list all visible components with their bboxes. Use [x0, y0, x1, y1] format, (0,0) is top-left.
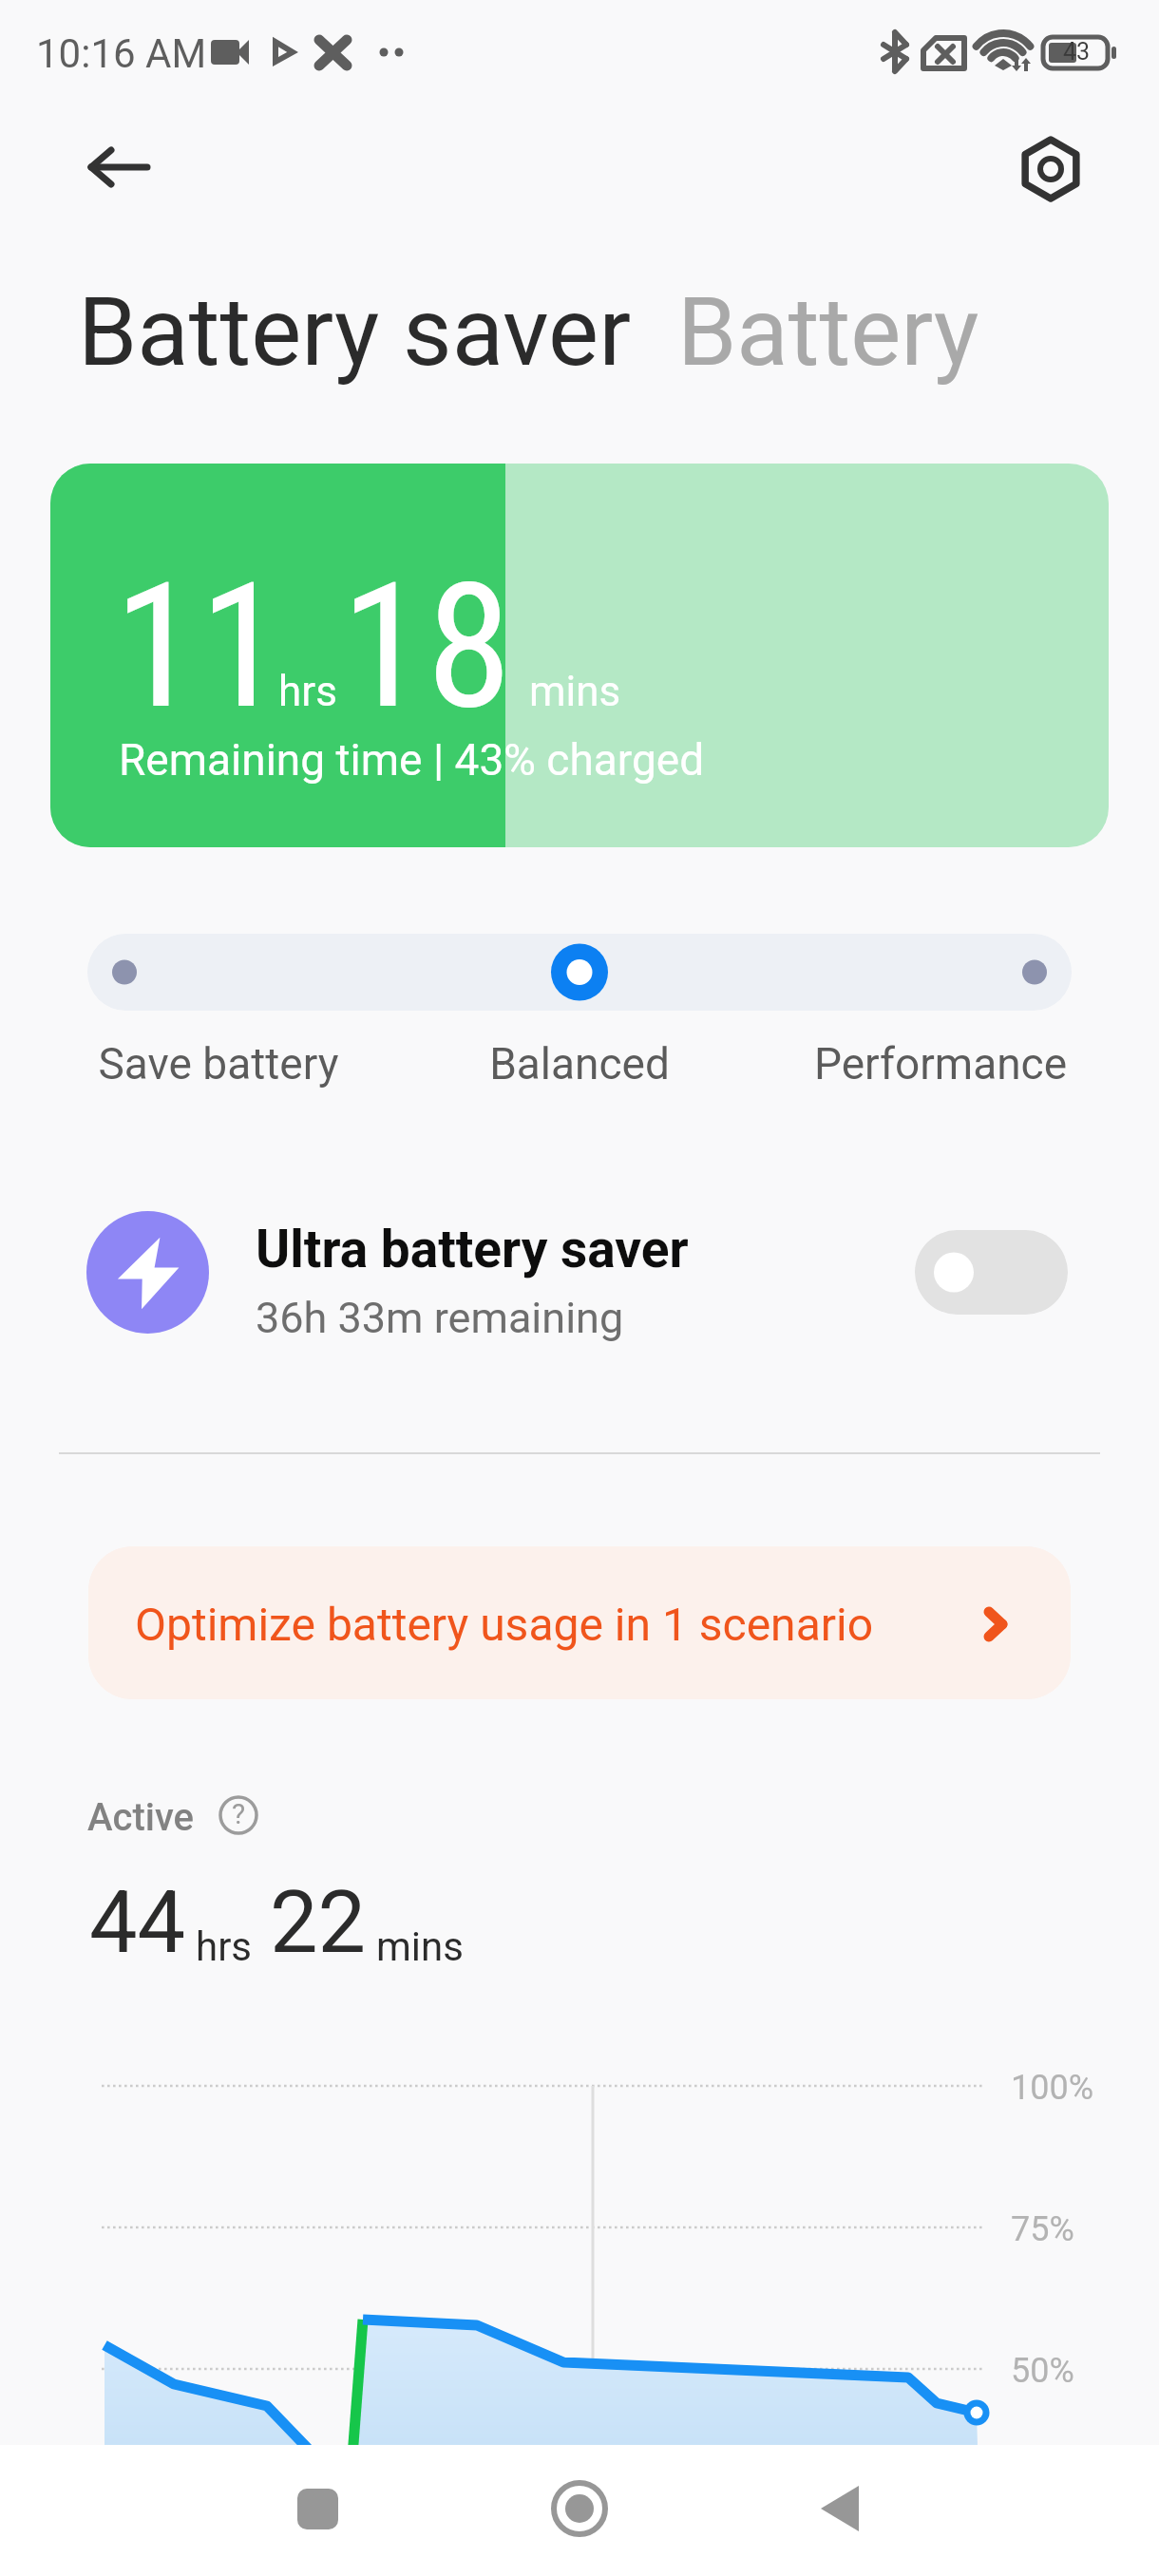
button[interactable]: Save battery [38, 1038, 399, 1089]
staticText: 43 [1063, 38, 1091, 66]
staticText: 36h 33m remaining [256, 1293, 624, 1343]
staticText: 75% [1011, 2209, 1074, 2249]
staticText: Optimize battery usage in 1 scenario [135, 1598, 874, 1651]
staticText: Ultra battery saver [256, 1219, 689, 1279]
staticText: 50% [1011, 2351, 1074, 2391]
button[interactable]: Optimize battery usage in 1 scenario [88, 1546, 1071, 1699]
staticText: 18 [341, 545, 512, 748]
button[interactable]: Ultra battery saver toggle [915, 1230, 1068, 1315]
staticText: 100% [1011, 2068, 1094, 2108]
staticText: Remaining time | 43% charged [119, 734, 705, 786]
staticText: ? [232, 1797, 246, 1830]
button[interactable]: Help about active time [217, 1793, 260, 1837]
button[interactable]: Back [57, 124, 181, 210]
staticText: 10:16 AM [36, 30, 207, 77]
button[interactable]: Home [522, 2445, 636, 2576]
staticText: mins [376, 1923, 464, 1970]
button[interactable]: Recents [260, 2445, 374, 2576]
button[interactable]: Performance [760, 1038, 1121, 1089]
button[interactable]: Ultra battery saver [0, 1192, 1159, 1354]
button[interactable]: 11 [50, 464, 1109, 847]
staticText: Active [87, 1795, 194, 1840]
button[interactable]: Balanced [399, 1038, 760, 1089]
staticText: hrs [278, 667, 337, 716]
staticText: Battery [677, 276, 979, 388]
staticText: 22 [270, 1873, 367, 1973]
staticText: Battery saver [78, 276, 632, 388]
button[interactable]: Settings [1003, 122, 1098, 217]
staticText: 44 [89, 1873, 186, 1973]
staticText: mins [529, 667, 621, 716]
button[interactable]: Back [783, 2445, 897, 2576]
staticText: 11 [114, 545, 285, 748]
staticText: hrs [196, 1923, 253, 1970]
